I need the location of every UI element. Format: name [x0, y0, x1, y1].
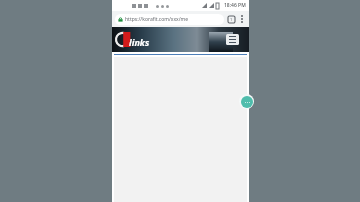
- staticText: https://korafit.com/xxx/me: [125, 16, 189, 23]
- staticText: links: [129, 36, 150, 48]
- staticText: 18:46 PM: [224, 2, 246, 9]
- button[interactable]: Tabs: [227, 15, 236, 24]
- staticText: 1: [230, 17, 233, 22]
- button[interactable]: links: [116, 32, 155, 47]
- button[interactable]: Chat: [241, 96, 253, 108]
- button[interactable]: More options: [238, 13, 246, 25]
- button[interactable]: Menu: [226, 34, 239, 45]
- button[interactable]: https://korafit.com/xxx/me: [115, 14, 224, 25]
